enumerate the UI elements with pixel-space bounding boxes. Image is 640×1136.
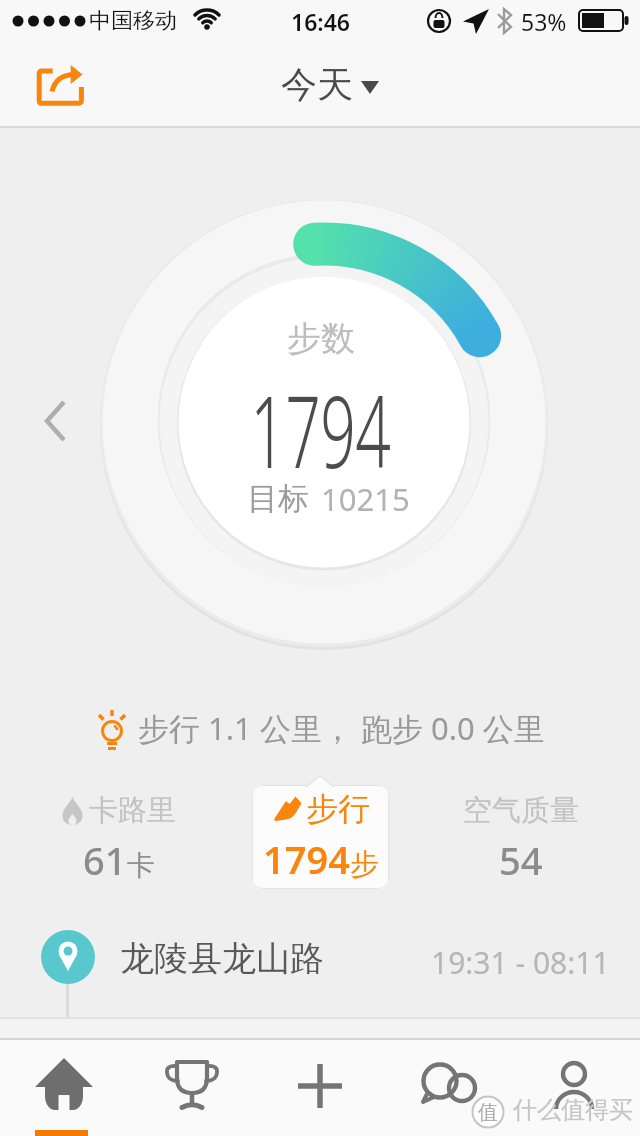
button[interactable]	[256, 1040, 384, 1136]
staticText: 龙陵县龙山路	[120, 937, 324, 980]
staticText: 53%	[521, 6, 567, 37]
staticText: 目标	[247, 479, 309, 518]
staticText: 值	[478, 1100, 498, 1125]
button[interactable]: 步行	[252, 785, 389, 889]
staticText: 什么值得买	[513, 1095, 633, 1125]
staticText: 61	[83, 834, 127, 882]
staticText: 中国移动	[89, 7, 177, 35]
button[interactable]	[384, 1040, 512, 1136]
staticText: 步	[350, 846, 379, 883]
staticText: 空气质量	[463, 792, 579, 829]
staticText: 1794	[263, 833, 350, 885]
staticText: 步行 1.1 公里， 跑步 0.0 公里	[138, 707, 545, 749]
button[interactable]: 今天	[250, 52, 410, 116]
staticText: 54	[499, 834, 543, 882]
button[interactable]	[128, 1040, 256, 1136]
button[interactable]	[36, 392, 76, 448]
staticText: 1794	[250, 362, 391, 497]
staticText: 19:31 - 08:11	[431, 942, 610, 974]
button[interactable]	[0, 1040, 128, 1136]
staticText: 10215	[321, 478, 410, 518]
button[interactable]: 龙陵县龙山路	[0, 920, 640, 996]
staticText: 16:46	[291, 6, 350, 37]
staticText: 卡	[127, 848, 155, 883]
staticText: 步数	[287, 317, 355, 360]
staticText: 今天	[281, 62, 353, 107]
button[interactable]	[28, 52, 100, 116]
button[interactable]	[512, 1040, 640, 1136]
staticText: 卡路里	[89, 792, 176, 829]
staticText: 步行	[306, 789, 370, 829]
